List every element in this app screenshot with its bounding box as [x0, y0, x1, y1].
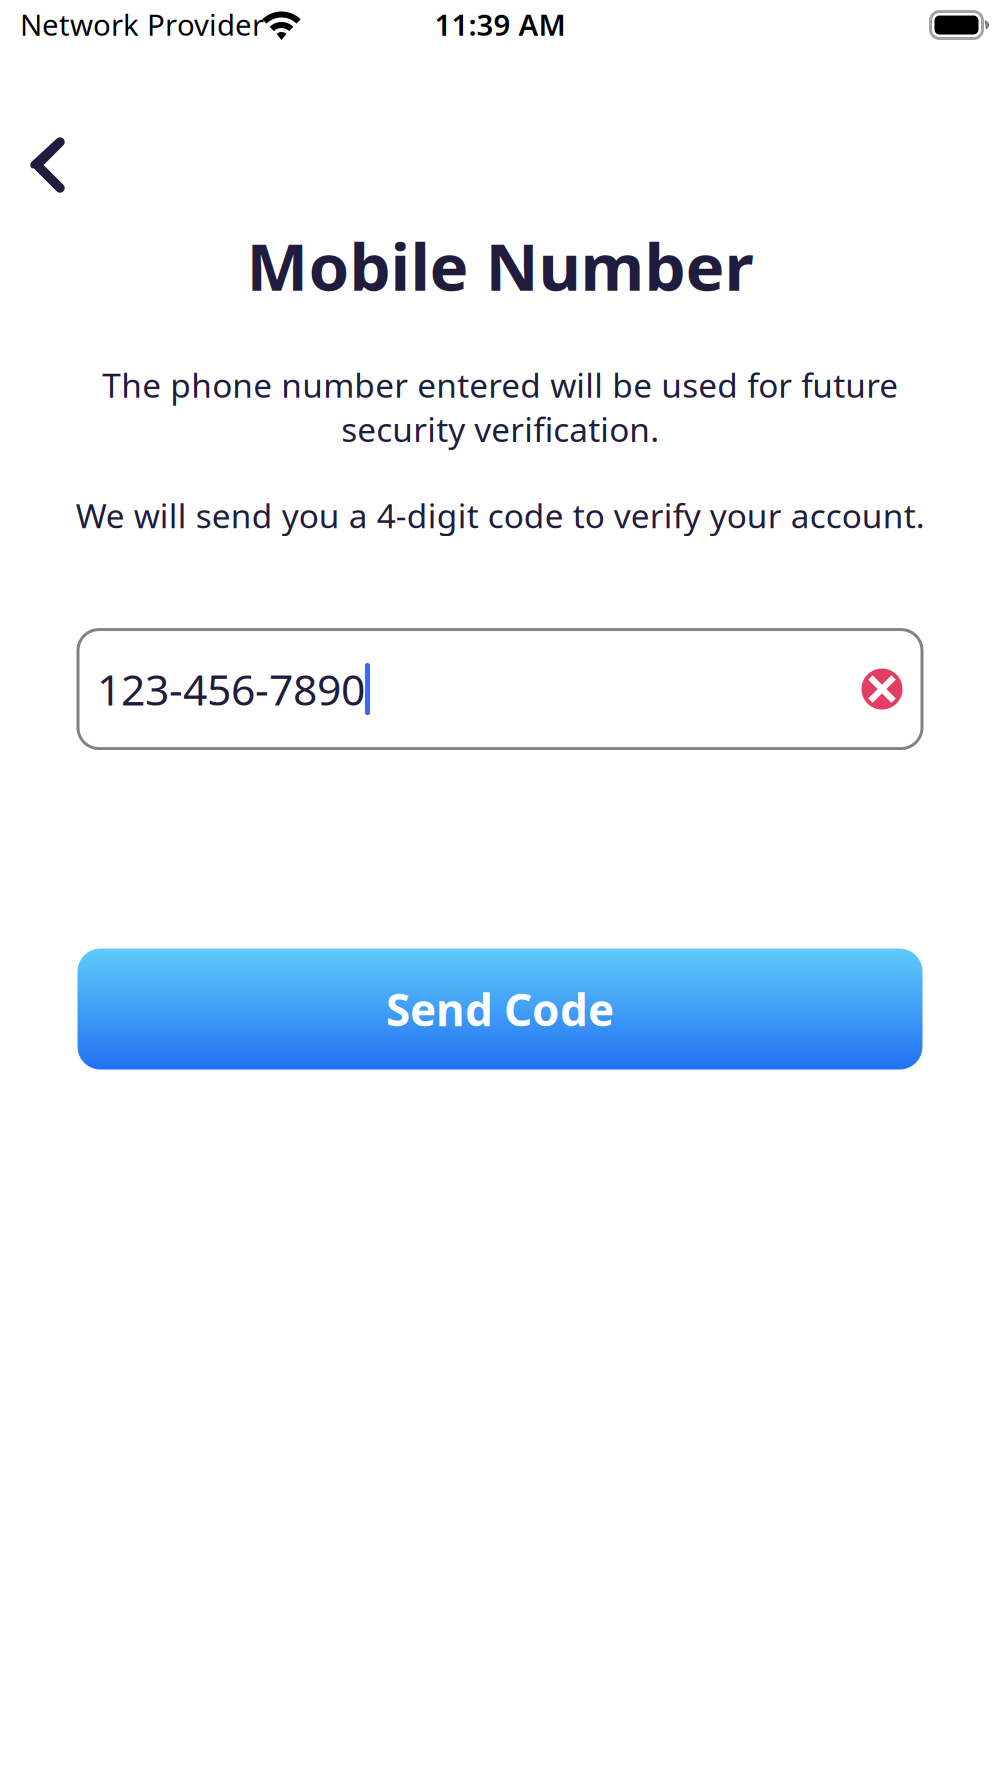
- button[interactable]: 123-456-7890: [78, 630, 922, 749]
- staticText: Send Code: [386, 980, 614, 1038]
- staticText: 11:39 AM: [434, 5, 565, 44]
- staticText: Mobile Number: [246, 222, 753, 309]
- staticText: We will send you a 4-digit code to verif…: [75, 493, 924, 538]
- staticText: The phone number entered will be used fo…: [102, 363, 898, 451]
- button[interactable]: Back: [18, 130, 84, 200]
- button[interactable]: Clear text: [851, 658, 913, 720]
- button[interactable]: Send Code: [77, 949, 922, 1070]
- staticText: Network Provider: [20, 5, 264, 44]
- staticText: 123-456-7890: [97, 661, 365, 717]
